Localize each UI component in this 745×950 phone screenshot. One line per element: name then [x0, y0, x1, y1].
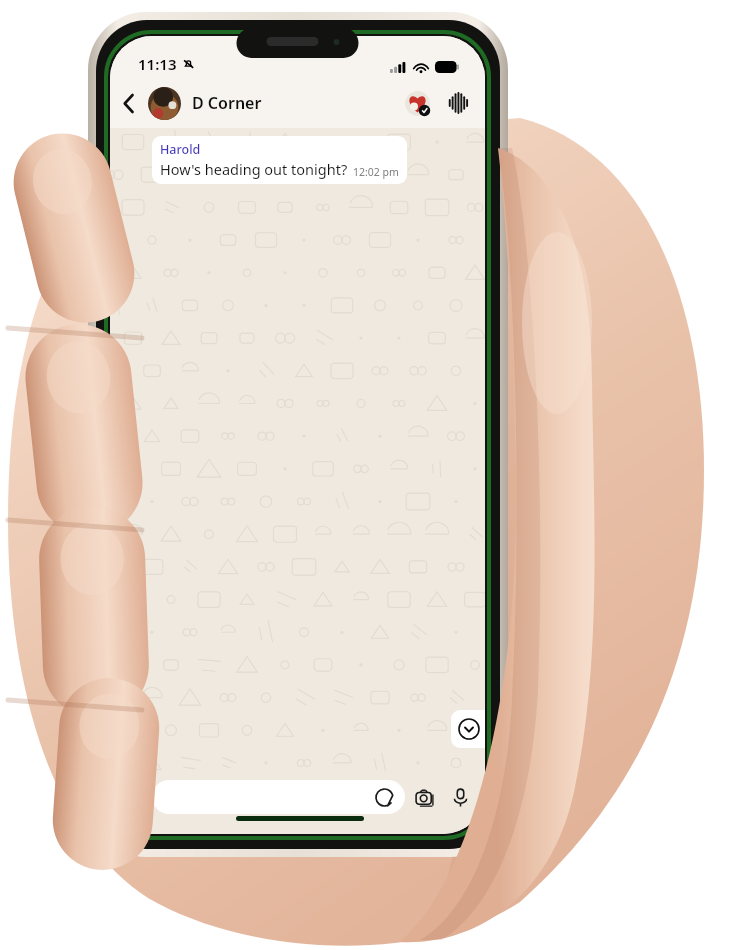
staticText: 12:02 pm — [353, 165, 399, 179]
button[interactable]: Attach — [118, 780, 152, 814]
button[interactable]: Voice — [437, 81, 481, 125]
staticText: 11:13 — [138, 54, 177, 74]
button[interactable]: Back — [110, 84, 148, 122]
button[interactable] — [152, 780, 405, 814]
staticText: How's heading out tonight? — [160, 159, 348, 179]
button[interactable]: Scroll to bottom — [451, 710, 485, 748]
button[interactable]: Harold — [152, 136, 407, 184]
staticText: D Corner — [192, 92, 262, 114]
button[interactable]: Status — [397, 83, 437, 123]
button[interactable]: D Corner — [148, 78, 397, 128]
button[interactable]: Camera — [405, 778, 443, 816]
button[interactable]: Voice message — [443, 780, 477, 814]
staticText: Harold — [160, 141, 201, 158]
